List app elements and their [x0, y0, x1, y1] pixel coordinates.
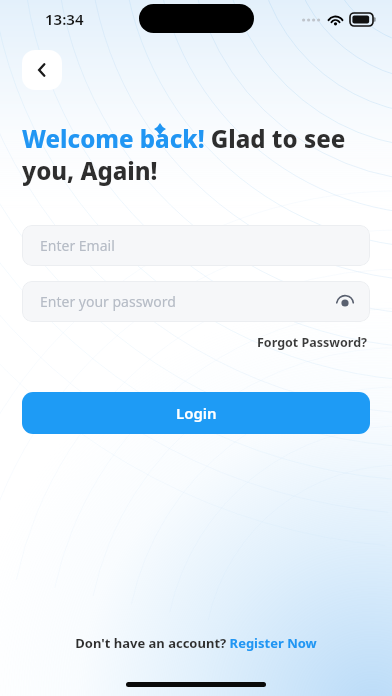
staticText: 13:34 [45, 9, 84, 29]
staticText: Don't have an account? Register Now [75, 634, 317, 652]
staticText: Welcome back! Glad to see you, Again! [22, 122, 370, 187]
button[interactable]: Don't have an account? Register Now [0, 630, 392, 656]
button[interactable]: Show password [330, 287, 360, 317]
button[interactable]: Back [22, 50, 62, 90]
button[interactable]: Forgot Password? [255, 332, 370, 353]
staticText: Enter Email [40, 236, 115, 255]
staticText: Enter your password [40, 292, 176, 311]
staticText: Login [176, 403, 217, 423]
button[interactable]: Enter Email [22, 225, 370, 266]
button[interactable]: Login [22, 392, 370, 434]
button[interactable]: Enter your password [22, 281, 370, 322]
staticText: Forgot Password? [257, 334, 368, 351]
